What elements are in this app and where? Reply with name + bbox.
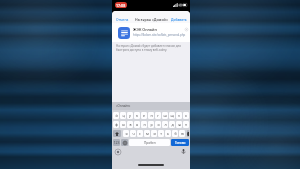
staticText: «Онлайн» xyxy=(116,104,131,108)
staticText: з xyxy=(178,113,180,118)
button[interactable]: л xyxy=(162,121,168,128)
staticText: й xyxy=(115,113,118,118)
button[interactable]: ф xyxy=(113,121,119,128)
button[interactable]: з xyxy=(176,112,182,119)
staticText: п xyxy=(143,122,146,127)
staticText: х xyxy=(185,113,187,118)
staticText: щ xyxy=(170,113,174,118)
staticText: ц xyxy=(122,113,125,118)
staticText: https://lkdom.site/caflats_personal.php xyxy=(133,33,186,37)
staticText: ь xyxy=(167,131,169,136)
staticText: 17:08 xyxy=(116,3,126,8)
button[interactable]: х xyxy=(183,112,189,119)
staticText: л xyxy=(164,122,167,127)
button[interactable]: в xyxy=(127,121,133,128)
staticText: г xyxy=(157,113,159,118)
button[interactable]: а xyxy=(134,121,140,128)
staticText: о xyxy=(157,122,160,127)
staticText: Добавить xyxy=(171,17,187,21)
staticText: т xyxy=(160,131,162,136)
staticText: в xyxy=(129,122,132,127)
staticText: На экран «Домой» xyxy=(135,17,168,22)
staticText: э xyxy=(185,122,187,127)
staticText: ю xyxy=(181,131,184,136)
staticText: д xyxy=(171,122,174,127)
staticText: я xyxy=(125,131,128,136)
button[interactable]: к xyxy=(134,112,140,119)
staticText: ы xyxy=(122,122,125,127)
button[interactable]: Remove xyxy=(185,28,188,31)
staticText: с xyxy=(139,131,141,136)
button[interactable]: б xyxy=(172,130,178,137)
button[interactable]: Emoji xyxy=(121,139,128,146)
staticText: м xyxy=(146,131,149,136)
staticText: б xyxy=(174,131,177,136)
button[interactable]: ш xyxy=(162,112,168,119)
button[interactable]: о xyxy=(155,121,161,128)
button[interactable]: Пробел xyxy=(129,139,170,146)
staticText: к xyxy=(136,113,138,118)
button[interactable]: Добавить xyxy=(171,17,187,21)
staticText: ф xyxy=(115,122,118,127)
button[interactable]: м xyxy=(144,130,150,137)
staticText: Готово xyxy=(175,141,186,145)
staticText: Пробел xyxy=(144,141,156,145)
staticText: ч xyxy=(132,131,135,136)
button[interactable]: Shift xyxy=(113,130,121,137)
staticText: у xyxy=(129,113,131,118)
button[interactable]: ж xyxy=(176,121,182,128)
staticText: На экран «Домой» будет добавлен значок д… xyxy=(116,44,184,52)
staticText: Отмена xyxy=(116,17,129,21)
button[interactable]: ч xyxy=(130,130,136,137)
staticText: е xyxy=(143,113,145,118)
button[interactable]: с xyxy=(137,130,143,137)
button[interactable]: г xyxy=(155,112,161,119)
button[interactable]: ы xyxy=(120,121,126,128)
button[interactable]: Отмена xyxy=(116,17,129,21)
button[interactable]: р xyxy=(148,121,154,128)
staticText: ш xyxy=(163,113,167,118)
staticText: ЖЭК Онлайн xyxy=(133,27,157,32)
button[interactable]: н xyxy=(148,112,154,119)
staticText: ж xyxy=(178,122,181,127)
button[interactable]: д xyxy=(169,121,175,128)
button[interactable]: 123 xyxy=(113,139,120,146)
button[interactable]: ь xyxy=(165,130,171,137)
button[interactable]: е xyxy=(141,112,147,119)
staticText: н xyxy=(150,113,153,118)
button[interactable]: я xyxy=(123,130,129,137)
button[interactable]: Dictation xyxy=(181,149,186,154)
staticText: 123 xyxy=(113,140,120,145)
button[interactable]: ц xyxy=(120,112,126,119)
staticText: а xyxy=(136,122,138,127)
button[interactable]: т xyxy=(158,130,164,137)
button[interactable]: ю xyxy=(179,130,185,137)
button[interactable]: Emoji xyxy=(115,149,121,155)
button[interactable]: Готово xyxy=(171,139,189,146)
button[interactable]: Backspace xyxy=(187,130,189,137)
button[interactable]: щ xyxy=(169,112,175,119)
button[interactable]: у xyxy=(127,112,133,119)
staticText: р xyxy=(150,122,153,127)
staticText: и xyxy=(153,131,156,136)
button[interactable]: й xyxy=(113,112,119,119)
button[interactable]: э xyxy=(183,121,189,128)
button[interactable]: «Онлайн» xyxy=(116,104,131,108)
button[interactable]: и xyxy=(151,130,157,137)
button[interactable]: п xyxy=(141,121,147,128)
